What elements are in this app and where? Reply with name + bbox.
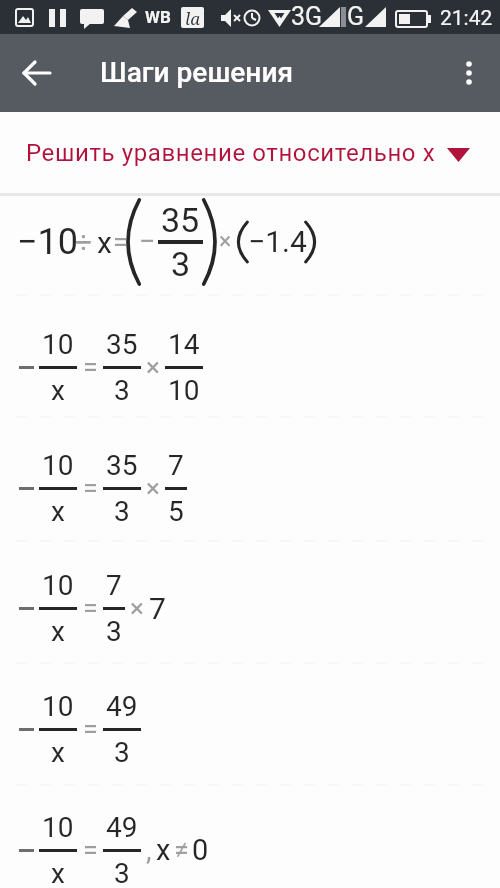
staticText: 21:42 [440, 6, 493, 31]
staticText: 7 [149, 591, 166, 626]
staticText: 10 [168, 374, 200, 407]
staticText: x [51, 495, 65, 528]
staticText: x [51, 374, 65, 407]
staticText: = [83, 713, 98, 745]
button[interactable]: Решить уравнение относительно x [0, 112, 500, 193]
staticText: x [97, 225, 112, 260]
staticText: G [347, 2, 365, 31]
staticText: = [113, 226, 128, 258]
staticText: 3 [114, 857, 130, 888]
staticText: − [139, 224, 156, 258]
staticText: 3G [291, 2, 323, 31]
staticText: 49 [106, 811, 138, 844]
staticText: × [219, 228, 232, 255]
button[interactable] [15, 51, 59, 95]
staticText: 3 [114, 374, 130, 407]
staticText: la [185, 7, 201, 28]
staticText: x [51, 615, 65, 648]
staticText: WB [145, 7, 171, 27]
staticText: 14 [168, 328, 200, 361]
staticText: 3 [171, 244, 191, 284]
staticText: x [51, 857, 65, 888]
staticText: = [83, 351, 98, 383]
staticText: 5 [168, 495, 184, 528]
staticText: 10 [42, 690, 74, 723]
staticText: 10 [42, 569, 74, 602]
staticText: −10 [17, 221, 79, 263]
staticText: 35 [106, 328, 138, 361]
staticText: × [146, 352, 160, 382]
staticText: × [146, 473, 160, 503]
staticText: = [83, 592, 98, 624]
staticText: , [146, 834, 152, 867]
staticText: 3 [106, 615, 122, 648]
staticText: 49 [106, 690, 138, 723]
staticText: ≠ [174, 834, 189, 866]
staticText: Решить уравнение относительно x [26, 139, 436, 167]
staticText: x [51, 736, 65, 769]
staticText: 10 [42, 328, 74, 361]
staticText: = [83, 834, 98, 866]
staticText: 3 [114, 495, 130, 528]
staticText: 10 [42, 449, 74, 482]
staticText: 35 [161, 200, 200, 240]
staticText: × [130, 593, 144, 623]
button[interactable] [447, 51, 491, 95]
staticText: −1.4 [248, 224, 307, 259]
staticText: 35 [106, 449, 138, 482]
staticText: 7 [168, 449, 184, 482]
staticText: x [156, 833, 171, 867]
staticText: Шаги решения [100, 56, 294, 89]
staticText: ÷ [75, 225, 93, 260]
staticText: = [83, 472, 98, 504]
staticText: 7 [106, 569, 122, 602]
staticText: 10 [42, 811, 74, 844]
staticText: 0 [192, 833, 209, 867]
staticText: 3 [114, 736, 130, 769]
